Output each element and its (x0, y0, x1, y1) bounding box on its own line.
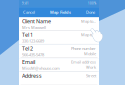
staticText: Client Name (22, 18, 51, 25)
staticText: MissM@xhouse.com (22, 65, 60, 71)
staticText: Done (86, 9, 95, 15)
staticText: Mobile (84, 51, 96, 56)
staticText: Cancel (23, 9, 35, 15)
staticText: Tel 1 (22, 31, 33, 38)
staticText: Map to... (81, 18, 96, 24)
staticText: Map to... (81, 32, 96, 37)
staticText: 566-435-5478 (22, 52, 44, 57)
staticText: Tel 2 (22, 45, 33, 52)
button[interactable]: Tel 2 (19, 44, 99, 58)
button[interactable]: Email (19, 58, 99, 72)
button[interactable]: Done (85, 9, 96, 15)
button[interactable]: Tel 1 (19, 31, 99, 44)
staticText: Map Fields (50, 9, 71, 15)
staticText: Email (22, 58, 35, 66)
staticText: Address (22, 72, 42, 79)
button[interactable]: Cancel (22, 9, 36, 15)
staticText: Work (86, 65, 96, 70)
staticText: Street (86, 73, 96, 78)
staticText: Mrs Maxwell (22, 25, 46, 30)
staticText: 330-123-6689 (22, 38, 44, 44)
button[interactable]: Client Name (19, 17, 99, 31)
button[interactable]: Address (19, 72, 99, 85)
staticText: 100% (88, 2, 96, 5)
staticText: Phone number (71, 46, 96, 51)
staticText: 9:41 (22, 2, 29, 5)
staticText: Email address (71, 59, 96, 65)
